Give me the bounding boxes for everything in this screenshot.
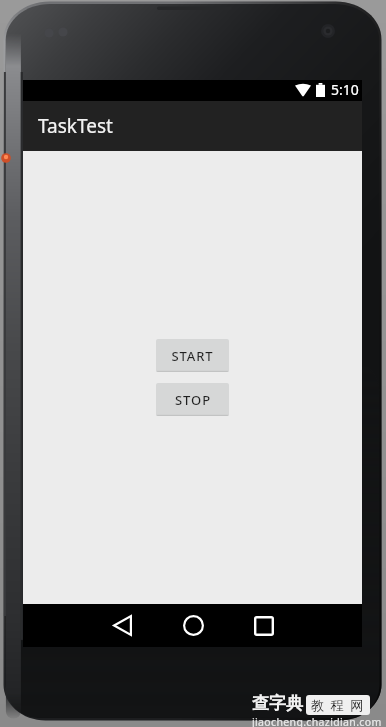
- button[interactable]: STOP: [156, 383, 229, 416]
- staticText: STOP: [175, 391, 211, 409]
- staticText: jiaocheng.chazidian.com: [252, 715, 382, 727]
- staticText: 教 程 网: [311, 696, 365, 714]
- staticText: 查字典: [252, 693, 303, 714]
- button[interactable]: Recent apps: [242, 604, 286, 647]
- staticText: 5:10: [331, 80, 359, 99]
- staticText: START: [171, 347, 214, 365]
- staticText: TaskTest: [38, 113, 113, 139]
- button[interactable]: Home: [171, 604, 215, 647]
- button[interactable]: Back: [100, 604, 144, 647]
- button[interactable]: START: [156, 339, 229, 372]
